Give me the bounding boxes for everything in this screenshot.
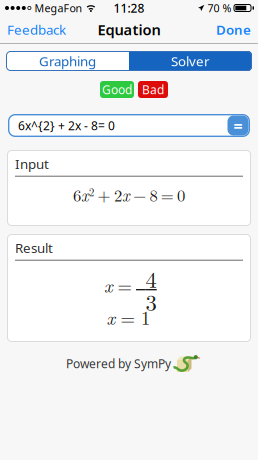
- staticText: 2: [114, 183, 122, 206]
- staticText: Bad: [142, 81, 164, 97]
- button[interactable]: Solve: [227, 115, 248, 135]
- staticText: Powered by SymPy: [66, 355, 171, 371]
- staticText: 6x^{2} + 2x - 8= 0: [18, 117, 115, 133]
- staticText: 3: [145, 285, 156, 317]
- button[interactable]: Feedback: [7, 21, 66, 38]
- button[interactable]: Done: [216, 21, 251, 38]
- staticText: MegaFon: [34, 1, 82, 15]
- staticText: +: [98, 183, 111, 206]
- staticText: Solver: [171, 52, 210, 70]
- button[interactable]: Good: [100, 81, 134, 98]
- staticText: 2: [89, 184, 94, 199]
- staticText: =: [233, 115, 242, 136]
- staticText: =: [120, 304, 135, 330]
- staticText: Input: [15, 155, 49, 173]
- staticText: x: [104, 271, 113, 298]
- staticText: 70 %: [207, 1, 231, 15]
- staticText: 6: [73, 183, 81, 206]
- staticText: x: [106, 304, 115, 330]
- staticText: Equation: [97, 20, 160, 39]
- staticText: x: [122, 183, 130, 206]
- button[interactable]: Solver: [129, 51, 252, 71]
- staticText: Feedback: [7, 21, 66, 38]
- staticText: 11:28: [113, 0, 144, 16]
- staticText: Good: [102, 81, 132, 97]
- staticText: =: [117, 271, 132, 298]
- staticText: =: [161, 183, 174, 206]
- staticText: Graphing: [39, 52, 96, 70]
- staticText: Done: [216, 21, 251, 38]
- staticText: 0: [177, 183, 185, 206]
- staticText: Result: [15, 239, 53, 257]
- staticText: −: [133, 183, 146, 206]
- button[interactable]: Graphing: [6, 51, 129, 71]
- staticText: 4: [145, 262, 156, 294]
- staticText: 1: [141, 304, 150, 330]
- button[interactable]: Bad: [138, 81, 168, 98]
- staticText: 8: [149, 183, 157, 206]
- staticText: x: [81, 183, 89, 206]
